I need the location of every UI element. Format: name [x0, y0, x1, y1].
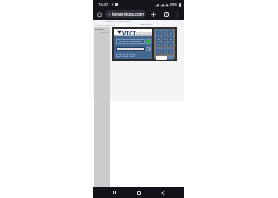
staticText: 1	[166, 13, 168, 17]
button[interactable]: 0	[162, 48, 167, 54]
button[interactable]: ADMIN HOME	[117, 20, 131, 23]
staticText: LOGOUT	[100, 31, 109, 34]
button[interactable]: 6	[168, 35, 173, 41]
staticText: 7	[158, 43, 160, 46]
staticText: 3	[170, 31, 172, 34]
button[interactable]: Back	[159, 189, 166, 196]
button[interactable]: 8	[162, 41, 167, 47]
button[interactable]: Dial	[168, 56, 173, 60]
staticText: 1	[158, 31, 160, 34]
staticText: DIALING: 7184059873	[119, 40, 142, 43]
button[interactable]: More options	[173, 10, 181, 18]
button[interactable]: Open dropdown	[146, 47, 151, 51]
button[interactable]: Phone control	[116, 54, 121, 57]
button[interactable]: Select phone	[116, 47, 145, 51]
button[interactable]: 2	[162, 29, 167, 35]
staticText: #	[170, 50, 172, 53]
button[interactable]: Phone control	[123, 54, 128, 57]
button[interactable]: Home	[135, 189, 142, 196]
staticText: lerservices.com	[112, 11, 144, 17]
staticText: 69%	[170, 2, 178, 7]
staticText: 9	[170, 43, 172, 46]
staticText: VICI	[122, 29, 136, 35]
button[interactable]: New tab	[149, 10, 157, 18]
staticText: VERSION	[106, 20, 115, 23]
button[interactable]: 7	[156, 41, 161, 47]
staticText: 13:37	[98, 2, 109, 7]
button[interactable]: LOGOUT	[100, 31, 109, 34]
button[interactable]: Switch tabs	[162, 10, 170, 18]
staticText: 6	[170, 37, 172, 40]
staticText: 5	[164, 37, 166, 40]
staticText: SESSION	[95, 28, 105, 31]
staticText: 8	[164, 43, 166, 46]
button[interactable]: lerservices.com	[105, 10, 146, 18]
staticText: 0	[164, 50, 166, 53]
button[interactable]: Recent apps	[111, 189, 118, 196]
staticText: VICIDIAL WEB PHONE	[95, 24, 116, 27]
button[interactable]: Phone control	[130, 54, 135, 57]
staticText: ADMIN HOME	[117, 20, 131, 23]
button[interactable]: 9	[168, 41, 173, 47]
button[interactable]: Home	[95, 10, 103, 18]
staticText: Web Phone	[140, 23, 152, 26]
staticText: 4	[158, 37, 160, 40]
button[interactable]: *	[156, 48, 161, 54]
button[interactable]: 4	[156, 35, 161, 41]
button[interactable]: #	[168, 48, 173, 54]
button[interactable]: VERSION	[106, 20, 115, 23]
button[interactable]: 1	[156, 29, 161, 35]
staticText: phone	[136, 29, 152, 35]
button[interactable]: 3	[168, 29, 173, 35]
button[interactable]: 5	[162, 35, 167, 41]
staticText: 2	[164, 31, 166, 34]
staticText: *	[158, 50, 160, 53]
